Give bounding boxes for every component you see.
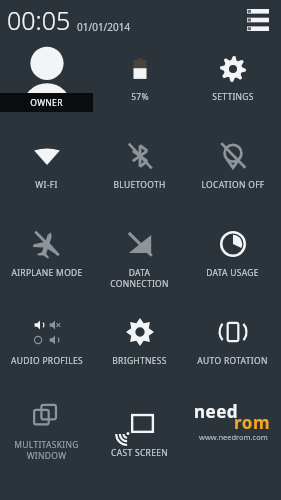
button[interactable]: Battery 57 percent: [93, 40, 186, 128]
staticText: DATA CONNECTION: [110, 267, 169, 289]
staticText: AIRPLANE MODE: [11, 267, 83, 279]
button[interactable]: Brightness: [93, 304, 186, 392]
staticText: BRIGHTNESS: [112, 355, 167, 367]
button[interactable]: Cast screen: [93, 392, 186, 480]
staticText: AUTO ROTATION: [197, 355, 268, 367]
button[interactable]: Settings: [186, 40, 279, 128]
staticText: DATA USAGE: [206, 267, 259, 279]
staticText: MULTITASKING WINDOW: [14, 439, 79, 461]
button[interactable]: Auto rotation: [186, 304, 279, 392]
staticText: WI-FI: [35, 179, 58, 191]
button[interactable]: Data usage: [186, 216, 279, 304]
staticText: AUDIO PROFILES: [11, 355, 83, 367]
staticText: OWNER: [30, 97, 63, 109]
staticText: CAST SCREEN: [111, 447, 168, 459]
staticText: 00:05: [7, 3, 71, 37]
button[interactable]: Airplane mode off: [0, 216, 93, 304]
staticText: rom: [234, 411, 270, 434]
staticText: SETTINGS: [212, 91, 254, 103]
button[interactable]: Data connection off: [93, 216, 186, 304]
button[interactable]: Bluetooth off: [93, 128, 186, 216]
staticText: BLUETOOTH: [113, 179, 166, 191]
staticText: 01/01/2014: [77, 20, 131, 34]
staticText: need: [194, 400, 239, 423]
button[interactable]: Audio profiles: [0, 304, 93, 392]
staticText: www.needrom.com: [199, 432, 268, 442]
button[interactable]: Owner: [0, 40, 93, 128]
staticText: LOCATION OFF: [201, 179, 265, 191]
button[interactable]: Multitasking window: [0, 392, 93, 480]
button[interactable]: Quick settings list: [243, 5, 273, 35]
button[interactable]: Wi-Fi: [0, 128, 93, 216]
button[interactable]: Location off: [186, 128, 279, 216]
staticText: 57%: [131, 91, 149, 103]
